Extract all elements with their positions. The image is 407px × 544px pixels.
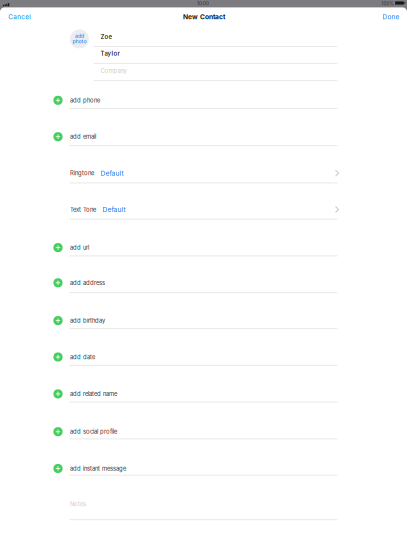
button[interactable]: Text Tone — [70, 200, 339, 218]
staticText: add email — [70, 133, 96, 140]
staticText: Taylor — [100, 50, 119, 57]
staticText: add birthday — [70, 317, 105, 324]
staticText: 100% — [381, 1, 393, 6]
button[interactable]: add date — [53, 348, 337, 366]
staticText: Default — [100, 169, 123, 177]
staticText: Default — [102, 205, 125, 214]
staticText: add phone — [70, 97, 100, 104]
button[interactable]: Done — [364, 9, 400, 25]
staticText: Zoe — [100, 33, 112, 40]
staticText: Company — [100, 67, 126, 74]
button[interactable]: add url — [53, 239, 337, 257]
staticText: add url — [70, 244, 89, 251]
button[interactable]: Cancel — [8, 9, 48, 25]
staticText: add date — [70, 353, 95, 361]
staticText: add instant message — [70, 465, 126, 472]
button[interactable]: add address — [53, 274, 337, 292]
button[interactable]: add phone — [53, 91, 337, 109]
button[interactable]: Ringtone — [70, 164, 339, 182]
staticText: add related name — [70, 390, 117, 397]
staticText: photo — [72, 38, 86, 44]
button[interactable]: add social profile — [53, 423, 337, 441]
staticText: add address — [70, 279, 105, 286]
staticText: Notes — [70, 500, 86, 508]
button[interactable]: add instant message — [53, 459, 337, 477]
staticText: Ringtone — [70, 170, 94, 177]
button[interactable]: Add photo — [70, 29, 89, 48]
button[interactable]: add birthday — [53, 312, 337, 330]
staticText: Done — [383, 13, 400, 21]
staticText: Cancel — [8, 13, 31, 21]
staticText: add social profile — [70, 428, 117, 435]
staticText: New Contact — [183, 13, 225, 21]
button[interactable]: add email — [53, 128, 337, 146]
button[interactable]: add related name — [53, 385, 337, 403]
staticText: add — [75, 33, 84, 39]
staticText: 10:00 — [197, 1, 209, 6]
staticText: Text Tone — [70, 206, 96, 213]
